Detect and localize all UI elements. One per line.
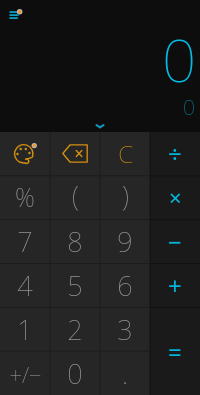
- staticText: 3: [117, 311, 133, 348]
- button[interactable]: =: [150, 307, 200, 395]
- button[interactable]: ): [100, 175, 150, 219]
- staticText: +: [168, 269, 182, 302]
- button[interactable]: ×: [150, 175, 200, 219]
- staticText: ×: [169, 182, 182, 212]
- staticText: −: [168, 225, 182, 258]
- button[interactable]: 4: [0, 263, 50, 307]
- staticText: 0: [183, 93, 195, 122]
- button[interactable]: 0: [50, 351, 100, 395]
- button[interactable]: 5: [50, 263, 100, 307]
- button[interactable]: Menu: [4, 4, 28, 28]
- button[interactable]: 1: [0, 307, 50, 351]
- staticText: 5: [67, 267, 83, 304]
- button[interactable]: −: [150, 219, 200, 263]
- button[interactable]: +: [150, 263, 200, 307]
- button[interactable]: C: [100, 132, 150, 175]
- button[interactable]: Backspace: [50, 132, 100, 175]
- staticText: 0: [67, 355, 83, 392]
- button[interactable]: 3: [100, 307, 150, 351]
- staticText: 9: [117, 223, 133, 260]
- staticText: +/−: [9, 359, 42, 389]
- button[interactable]: (: [50, 175, 100, 219]
- staticText: 1: [17, 311, 33, 348]
- staticText: 0: [162, 18, 197, 100]
- button[interactable]: %: [0, 175, 50, 219]
- staticText: 2: [67, 311, 83, 348]
- staticText: 8: [67, 223, 83, 260]
- button[interactable]: 7: [0, 219, 50, 263]
- staticText: 6: [117, 267, 133, 304]
- staticText: 4: [17, 267, 33, 304]
- button[interactable]: .: [100, 351, 150, 395]
- staticText: 7: [17, 223, 33, 260]
- staticText: C: [118, 137, 133, 170]
- staticText: %: [15, 180, 35, 214]
- button[interactable]: Themes: [0, 132, 50, 175]
- staticText: (: [72, 177, 79, 214]
- staticText: .: [122, 355, 128, 392]
- staticText: ): [122, 177, 129, 214]
- button[interactable]: 2: [50, 307, 100, 351]
- button[interactable]: 6: [100, 263, 150, 307]
- button[interactable]: ÷: [150, 132, 200, 175]
- staticText: =: [168, 335, 182, 368]
- button[interactable]: 8: [50, 219, 100, 263]
- button[interactable]: 9: [100, 219, 150, 263]
- staticText: ÷: [168, 137, 182, 170]
- button[interactable]: Expand history: [89, 120, 111, 131]
- button[interactable]: +/−: [0, 351, 50, 395]
